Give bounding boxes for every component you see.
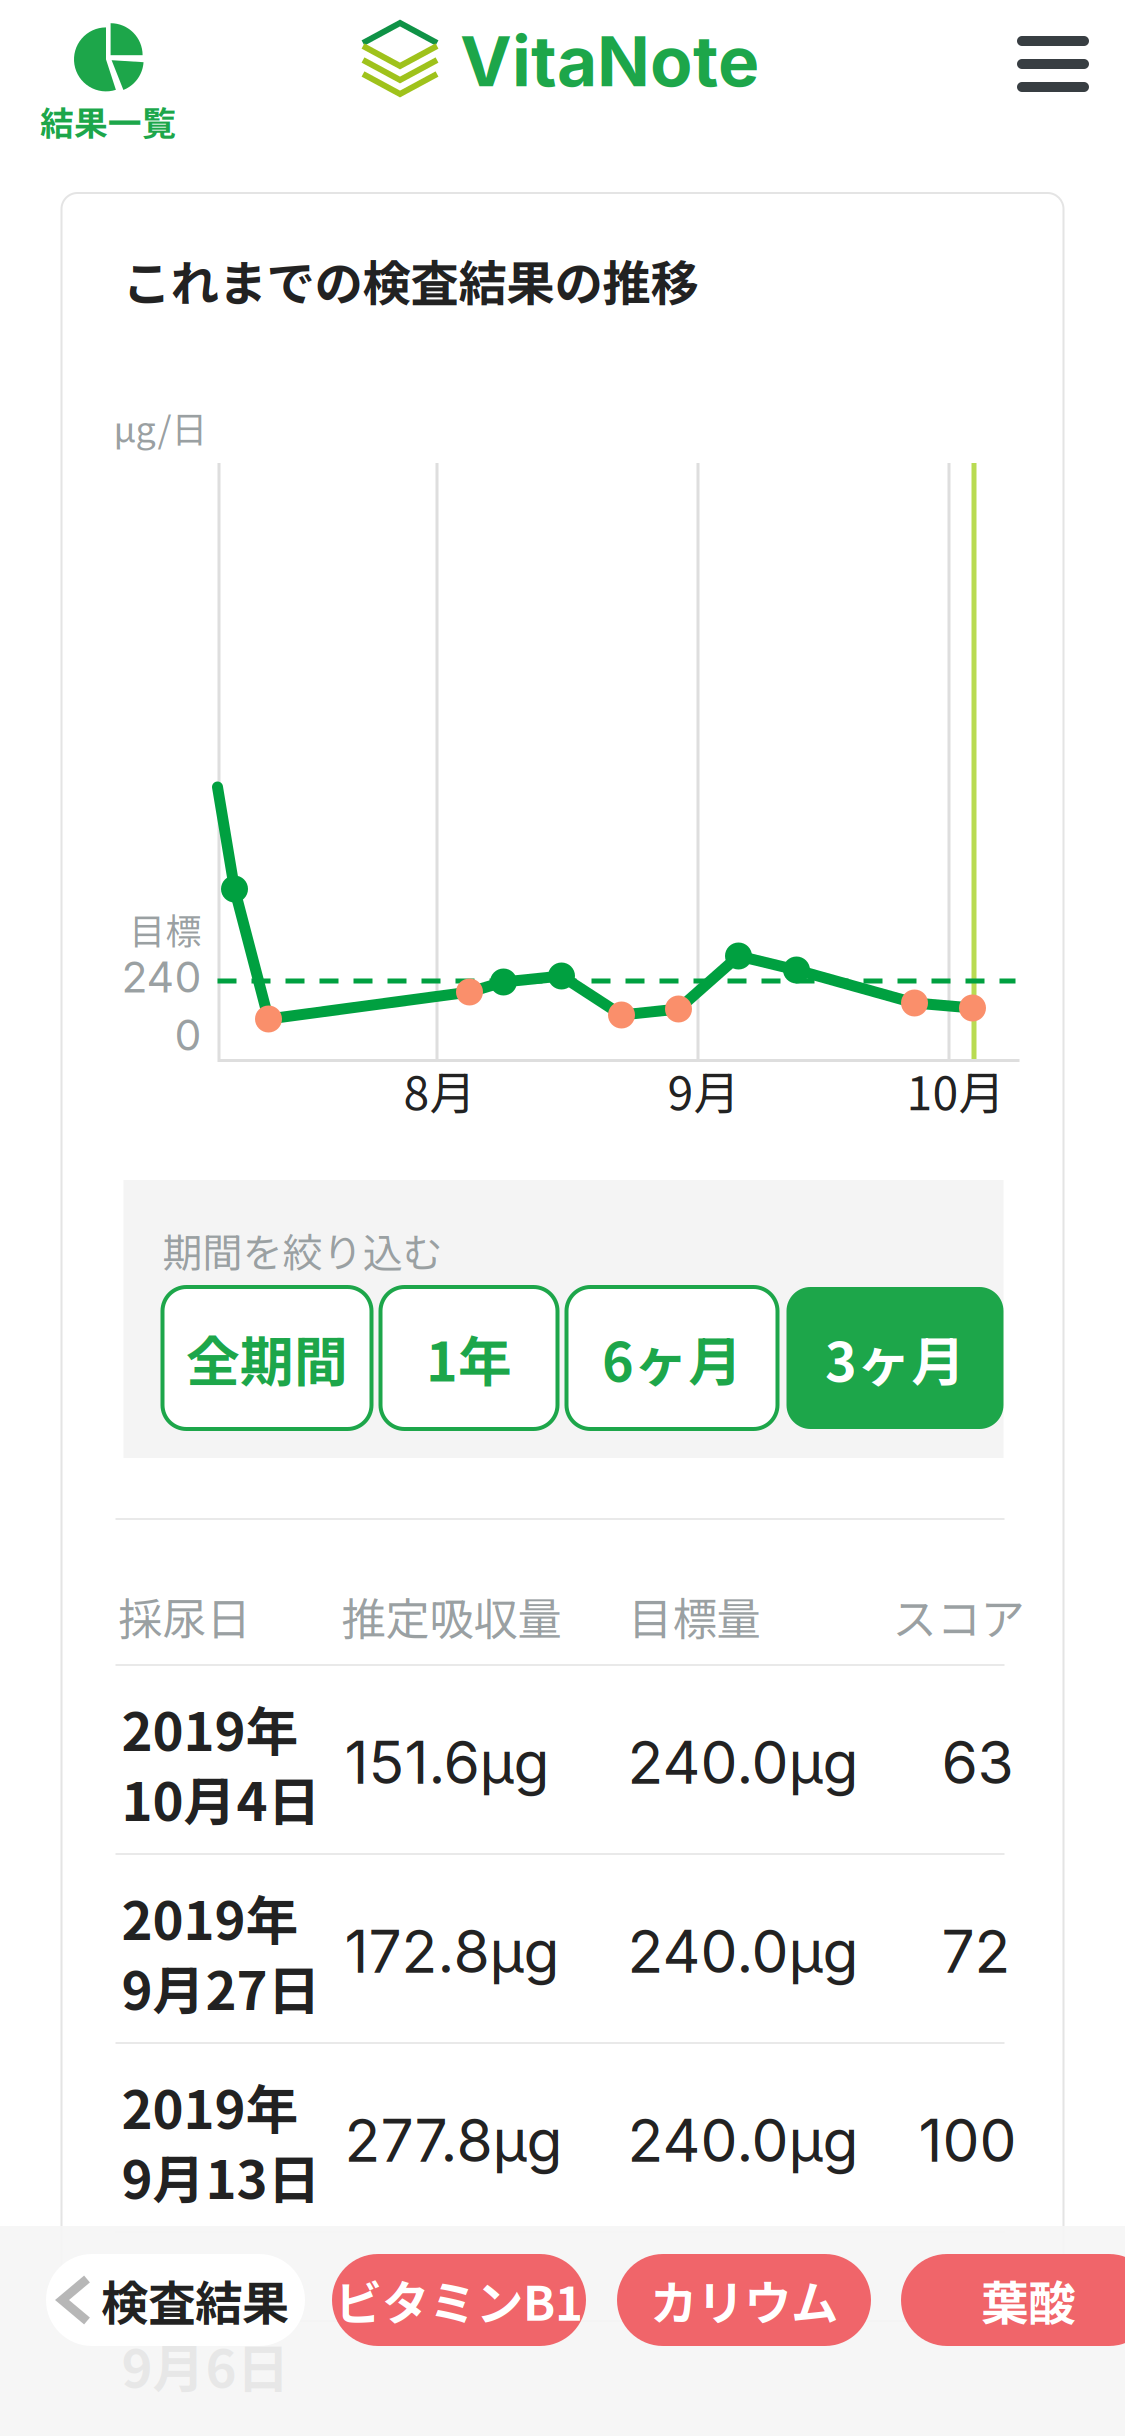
staticText: 2019年 — [121, 2068, 298, 2144]
button[interactable]: 3ヶ月 — [786, 1287, 1003, 1429]
staticText: 9月13日 — [121, 2138, 320, 2214]
staticText: 240.0μg — [627, 2105, 858, 2176]
staticText: 目標 — [129, 903, 201, 955]
staticText: 葉酸 — [981, 2266, 1075, 2334]
staticText: 採尿日 — [118, 1584, 250, 1648]
staticText: 0 — [174, 1009, 201, 1061]
staticText: 2019年 — [121, 2257, 298, 2333]
staticText: 2019年 — [121, 1879, 298, 1955]
staticText: 8月 — [403, 1056, 475, 1123]
staticText: 9月27日 — [121, 1949, 320, 2025]
button[interactable]: 1年 — [380, 1287, 557, 1429]
staticText: 2019年 — [121, 1690, 298, 1766]
staticText: 10月 — [906, 1056, 1004, 1123]
staticText: μg/日 — [113, 401, 207, 453]
staticText: これまでの検査結果の推移 — [122, 245, 698, 315]
staticText: 240 — [121, 951, 201, 1003]
button[interactable]: ビタミンB1 — [332, 2254, 586, 2346]
staticText: 100 — [918, 2105, 1016, 2176]
staticText: ビタミンB1 — [335, 2266, 583, 2334]
button[interactable]: 検査結果 — [46, 2254, 305, 2346]
staticText: 63 — [941, 1727, 1013, 1798]
staticText: 結果一覧 — [40, 97, 176, 145]
staticText: 151.6μg — [344, 1727, 549, 1798]
staticText: カリウム — [650, 2266, 838, 2334]
staticText: 277.8μg — [344, 2105, 562, 2176]
staticText: VitaNote — [460, 19, 759, 103]
button[interactable]: 結果一覧 — [20, 14, 196, 154]
button[interactable]: 6ヶ月 — [566, 1287, 777, 1429]
button[interactable]: 全期間 — [162, 1287, 371, 1429]
staticText: スコア — [892, 1584, 1024, 1648]
staticText: 9月 — [667, 1056, 739, 1123]
staticText: 9月6日 — [121, 2327, 289, 2403]
button[interactable]: 葉酸 — [901, 2254, 1125, 2346]
staticText: 検査結果 — [101, 2266, 289, 2334]
staticText: 6ヶ月 — [602, 1319, 742, 1397]
staticText: 240.0μg — [627, 1727, 858, 1798]
staticText: 240.0μg — [627, 1916, 858, 1987]
staticText: 期間を絞り込む — [162, 1221, 442, 1279]
staticText: 72 — [941, 1916, 1010, 1987]
staticText: 推定吸収量 — [341, 1584, 561, 1648]
staticText: 3ヶ月 — [825, 1319, 965, 1397]
staticText: 172.8μg — [344, 1916, 559, 1987]
staticText: 目標量 — [628, 1584, 760, 1648]
button[interactable]: Menu — [981, 0, 1125, 128]
button[interactable]: カリウム — [617, 2254, 871, 2346]
staticText: 全期間 — [186, 1319, 348, 1397]
staticText: 10月4日 — [121, 1760, 320, 1836]
staticText: 1年 — [426, 1319, 512, 1397]
